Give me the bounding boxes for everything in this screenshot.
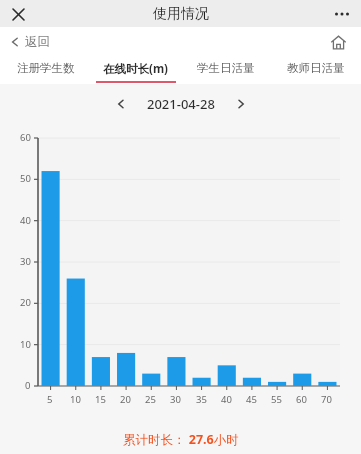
staticText: 0 xyxy=(25,379,31,392)
staticText: 40 xyxy=(20,214,31,227)
button[interactable]: Previous day xyxy=(109,92,133,116)
button[interactable]: Close xyxy=(7,3,29,25)
staticText: 70 xyxy=(321,393,332,406)
button[interactable]: More options xyxy=(330,2,354,26)
button[interactable]: 在线时长(m) xyxy=(91,56,181,84)
staticText: 注册学生数 xyxy=(17,61,75,75)
staticText: 在线时长(m) xyxy=(103,61,169,77)
button[interactable]: Home xyxy=(327,31,349,53)
staticText: 5 xyxy=(47,393,53,406)
staticText: 返回 xyxy=(25,34,50,50)
staticText: 45 xyxy=(246,393,257,406)
staticText: 35 xyxy=(196,393,207,406)
staticText: 使用情况 xyxy=(153,5,209,23)
button[interactable]: 2021-04-28 xyxy=(147,95,215,113)
staticText: 60 xyxy=(20,131,31,144)
button[interactable]: Next day xyxy=(229,92,253,116)
staticText: 教师日活量 xyxy=(287,61,345,75)
button[interactable]: 注册学生数 xyxy=(0,56,91,84)
staticText: 25 xyxy=(145,393,156,406)
staticText: 30 xyxy=(20,255,31,268)
staticText: 10 xyxy=(70,393,81,406)
staticText: 55 xyxy=(271,393,282,406)
button[interactable]: 学生日活量 xyxy=(181,56,271,84)
staticText: 60 xyxy=(296,393,307,406)
button[interactable]: 返回 xyxy=(10,34,50,50)
staticText: 累计时长： 27.6小时 xyxy=(123,431,239,448)
staticText: 10 xyxy=(20,338,31,351)
staticText: 50 xyxy=(20,172,31,185)
staticText: 15 xyxy=(95,393,106,406)
staticText: 20 xyxy=(120,393,131,406)
staticText: 20 xyxy=(20,296,31,309)
staticText: 40 xyxy=(221,393,232,406)
staticText: 学生日活量 xyxy=(197,61,255,75)
button[interactable]: 教师日活量 xyxy=(271,56,361,84)
staticText: 30 xyxy=(170,393,181,406)
